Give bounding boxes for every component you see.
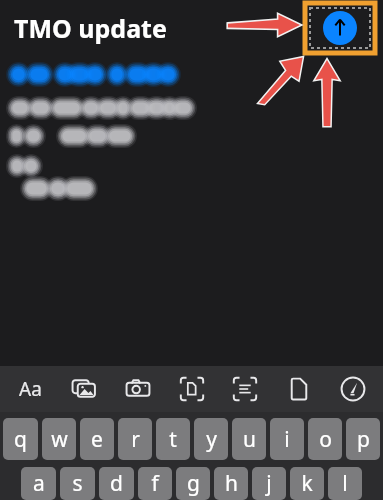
button[interactable]: f <box>138 467 172 500</box>
staticText: d <box>110 469 123 498</box>
button[interactable]: TMO update <box>14 11 167 45</box>
button[interactable]: h <box>214 467 248 500</box>
button[interactable]: o <box>308 418 342 460</box>
staticText: q <box>14 425 27 454</box>
button[interactable]: Markup <box>331 369 375 409</box>
staticText: r <box>131 425 140 454</box>
button[interactable]: t <box>156 418 190 460</box>
staticText: i <box>284 425 290 454</box>
button[interactable]: Aa <box>8 369 52 409</box>
staticText: k <box>301 469 313 498</box>
button[interactable]: w <box>42 418 76 460</box>
staticText: f <box>151 469 159 498</box>
button[interactable]: q <box>3 418 38 460</box>
button[interactable]: p <box>346 418 380 460</box>
button[interactable]: Scan document <box>170 369 214 409</box>
staticText: g <box>187 469 200 498</box>
button[interactable]: Scan text <box>223 369 267 409</box>
button[interactable]: u <box>232 418 266 460</box>
staticText: l <box>342 469 348 498</box>
staticText: j <box>266 469 272 498</box>
staticText: h <box>225 469 238 498</box>
staticText: Aa <box>19 376 42 402</box>
button[interactable]: r <box>118 418 152 460</box>
button[interactable]: y <box>194 418 228 460</box>
button[interactable]: Send <box>323 11 357 45</box>
button[interactable]: Photos <box>62 369 106 409</box>
button[interactable]: s <box>60 467 95 500</box>
staticText: e <box>91 425 103 454</box>
button[interactable]: j <box>252 467 286 500</box>
staticText: y <box>206 425 217 454</box>
staticText: u <box>243 425 256 454</box>
staticText: o <box>319 425 332 454</box>
staticText: t <box>169 425 177 454</box>
button[interactable]: i <box>270 418 304 460</box>
button[interactable]: Camera <box>116 369 160 409</box>
button[interactable]: g <box>176 467 210 500</box>
button[interactable]: Attach file <box>277 369 321 409</box>
staticText: a <box>33 469 45 498</box>
button[interactable]: k <box>290 467 324 500</box>
staticText: p <box>357 425 370 454</box>
staticText: s <box>72 469 83 498</box>
button[interactable]: a <box>21 467 56 500</box>
button[interactable]: l <box>328 467 362 500</box>
staticText: w <box>51 425 68 454</box>
button[interactable]: d <box>99 467 134 500</box>
button[interactable]: e <box>80 418 114 460</box>
